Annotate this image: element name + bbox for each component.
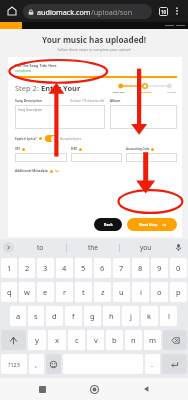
staticText: m bbox=[149, 335, 157, 345]
staticText: Metadata bbox=[140, 90, 152, 93]
button[interactable]: x bbox=[48, 330, 66, 350]
staticText: Step 2: bbox=[15, 83, 41, 93]
staticText: completed bbox=[15, 69, 31, 73]
staticText: , bbox=[35, 359, 38, 369]
staticText: 4 bbox=[62, 263, 67, 273]
button[interactable]: Song Description bbox=[15, 105, 105, 129]
staticText: p bbox=[176, 287, 181, 297]
button[interactable]: e bbox=[37, 282, 54, 302]
button[interactable]: m bbox=[144, 330, 161, 350]
button[interactable]: Next Step bbox=[127, 218, 177, 231]
staticText: audiomack.com bbox=[37, 7, 91, 17]
button[interactable]: Backspace bbox=[163, 330, 187, 350]
staticText: Album bbox=[110, 99, 121, 103]
button[interactable]: you bbox=[120, 239, 172, 256]
button[interactable]: a bbox=[10, 306, 26, 326]
button[interactable]: q bbox=[1, 282, 17, 302]
staticText: j bbox=[130, 311, 132, 321]
button[interactable]: Back bbox=[94, 218, 122, 231]
button[interactable]: Enter bbox=[162, 354, 187, 374]
button[interactable]: b bbox=[106, 330, 123, 350]
button[interactable]: 9 bbox=[151, 258, 168, 278]
button[interactable]: k bbox=[141, 306, 158, 326]
button[interactable]: 5 bbox=[75, 258, 92, 278]
staticText: s bbox=[34, 311, 38, 321]
button[interactable]: z bbox=[94, 282, 111, 302]
button[interactable]: Emoji bbox=[46, 354, 61, 374]
staticText: g bbox=[90, 311, 95, 321]
button[interactable] bbox=[110, 105, 177, 129]
button[interactable]: l bbox=[160, 306, 177, 326]
button[interactable]: 1 bbox=[1, 258, 17, 278]
button[interactable]: Additional Metadata bbox=[15, 169, 59, 173]
button[interactable]: h bbox=[103, 306, 120, 326]
button[interactable] bbox=[126, 153, 177, 162]
button[interactable]: s bbox=[28, 306, 44, 326]
staticText: you bbox=[140, 243, 152, 252]
staticText: ISRC bbox=[71, 147, 78, 151]
button[interactable]: Shift bbox=[1, 330, 26, 350]
button[interactable]: p bbox=[170, 282, 187, 302]
button[interactable]: audiomack.com bbox=[23, 4, 152, 19]
staticText: No explicit lyrics bbox=[60, 137, 82, 141]
button[interactable]: , bbox=[29, 354, 44, 374]
button[interactable]: to bbox=[14, 239, 66, 256]
button[interactable]: 4 bbox=[56, 258, 73, 278]
staticText: Release bbox=[167, 90, 177, 93]
button[interactable]: o bbox=[151, 282, 168, 302]
staticText: Next Step bbox=[139, 222, 158, 227]
button[interactable]: y bbox=[28, 330, 46, 350]
button[interactable]: More suggestions bbox=[3, 242, 14, 253]
button[interactable] bbox=[45, 135, 58, 142]
button[interactable]: u bbox=[113, 282, 130, 302]
button[interactable]: w bbox=[19, 282, 35, 302]
button[interactable]: Home bbox=[4, 3, 20, 19]
button[interactable]: More options bbox=[170, 4, 184, 18]
button[interactable]: . bbox=[145, 354, 160, 374]
staticText: r bbox=[63, 287, 67, 297]
button[interactable]: j bbox=[122, 306, 139, 326]
button[interactable]: 6 bbox=[94, 258, 111, 278]
staticText: e bbox=[43, 287, 48, 297]
button[interactable]: Back bbox=[136, 379, 156, 399]
staticText: 8 bbox=[138, 263, 143, 273]
staticText: 10 bbox=[161, 9, 167, 15]
staticText: i bbox=[140, 287, 142, 297]
staticText: Song Description bbox=[15, 99, 42, 103]
button[interactable]: Voice input bbox=[172, 241, 185, 254]
button[interactable]: f bbox=[65, 306, 82, 326]
staticText: w bbox=[24, 287, 30, 297]
staticText: b bbox=[112, 335, 117, 345]
button[interactable]: Tabs bbox=[156, 4, 170, 18]
button[interactable]: 8 bbox=[132, 258, 149, 278]
button[interactable]: i bbox=[132, 282, 149, 302]
button[interactable]: r bbox=[56, 282, 73, 302]
staticText: l bbox=[168, 311, 170, 321]
button[interactable]: 7 bbox=[113, 258, 130, 278]
button[interactable]: t bbox=[75, 282, 92, 302]
staticText: o bbox=[157, 287, 162, 297]
staticText: Basic Info bbox=[113, 90, 125, 93]
button[interactable]: g bbox=[84, 306, 101, 326]
button[interactable]: Home bbox=[84, 379, 104, 399]
button[interactable]: c bbox=[68, 330, 85, 350]
staticText: Back bbox=[104, 222, 113, 227]
button[interactable]: the bbox=[67, 239, 119, 256]
staticText: n bbox=[131, 335, 136, 345]
button[interactable]: v bbox=[87, 330, 104, 350]
button[interactable]: d bbox=[46, 306, 63, 326]
button[interactable]: 3 bbox=[37, 258, 54, 278]
staticText: 3 bbox=[43, 263, 48, 273]
button[interactable]: ?123 bbox=[1, 354, 27, 374]
button[interactable] bbox=[71, 153, 122, 162]
button[interactable]: Recent apps bbox=[32, 379, 52, 399]
button[interactable]: 0 bbox=[170, 258, 187, 278]
staticText: d bbox=[52, 311, 57, 321]
button[interactable]: 2 bbox=[19, 258, 35, 278]
button[interactable]: n bbox=[125, 330, 142, 350]
button[interactable] bbox=[15, 153, 67, 162]
staticText: to bbox=[37, 243, 44, 252]
staticText: 7 bbox=[119, 263, 124, 273]
staticText: f bbox=[72, 311, 75, 321]
